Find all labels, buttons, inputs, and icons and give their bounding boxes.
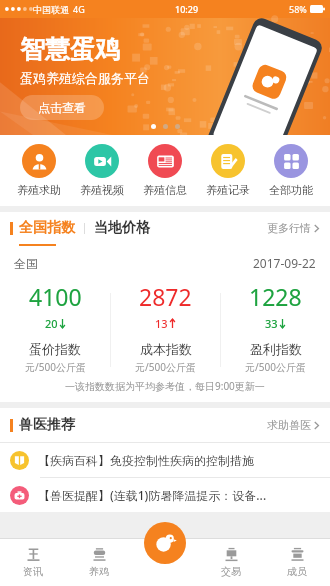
staticText: 养殖信息 [143, 183, 187, 197]
staticText: 20 [45, 316, 58, 331]
button[interactable]: 成员 [264, 538, 330, 586]
staticText: 4100 [29, 281, 82, 312]
staticText: 33 [265, 316, 278, 331]
staticText: 全国 [14, 256, 38, 271]
staticText: 兽医推荐 [19, 416, 75, 434]
button[interactable]: 养殖求助 [15, 144, 63, 197]
staticText: 全国指数 [19, 219, 75, 237]
staticText: 1228 [249, 281, 302, 312]
staticText: 中国联通 [33, 4, 69, 15]
button[interactable]: 2872 [111, 281, 220, 379]
staticText: 2017-09-22 [253, 255, 316, 271]
staticText: 养殖记录 [206, 183, 250, 197]
staticText: 4G [73, 3, 85, 15]
staticText: 蛋价指数 [29, 341, 81, 357]
button[interactable]: 智慧蛋鸡 [144, 522, 186, 564]
staticText: 成本指数 [140, 341, 192, 357]
button[interactable]: 养殖视频 [78, 144, 126, 197]
button[interactable]: 当地价格 [94, 219, 150, 237]
button[interactable]: 【疾病百科】免疫控制性疾病的控制措施 [0, 443, 330, 477]
button[interactable]: 全部功能 [267, 144, 315, 197]
button[interactable]: 【兽医提醒】(连载1)防暑降温提示：设备... [0, 478, 330, 512]
staticText: 求助兽医 [267, 418, 311, 432]
staticText: 智慧蛋鸡 [20, 34, 120, 65]
staticText: 资讯 [23, 565, 43, 578]
staticText: 元/500公斤蛋 [25, 360, 86, 374]
staticText: 元/500公斤蛋 [135, 360, 196, 374]
staticText: 盈利指数 [250, 341, 302, 357]
staticText: 10:29 [175, 3, 199, 15]
button[interactable]: 交易 [198, 538, 264, 586]
staticText: 一该指数数据为平均参考值，每日9:00更新一 [65, 379, 265, 393]
staticText: 养鸡 [89, 565, 109, 578]
staticText: 养殖视频 [80, 183, 124, 197]
staticText: 元/500公斤蛋 [245, 360, 306, 374]
button[interactable]: 点击查看 [20, 95, 104, 120]
button[interactable]: 求助兽医 [267, 418, 320, 432]
staticText: 58% [289, 3, 307, 15]
staticText: 点击查看 [38, 100, 86, 115]
button[interactable]: 1228 [221, 281, 330, 379]
staticText: 更多行情 [267, 221, 311, 235]
button[interactable]: 资讯 [0, 538, 66, 586]
staticText: 蛋鸡养殖综合服务平台 [20, 70, 150, 86]
staticText: 全部功能 [269, 183, 313, 197]
button[interactable]: 养殖信息 [141, 144, 189, 197]
staticText: 2872 [139, 281, 192, 312]
button[interactable]: 养殖记录 [204, 144, 252, 197]
button[interactable]: 更多行情 [267, 221, 320, 235]
staticText: 13 [155, 316, 168, 331]
staticText: 交易 [221, 565, 241, 578]
button[interactable]: 4100 [0, 281, 110, 379]
staticText: 成员 [287, 565, 307, 578]
staticText: 【兽医提醒】(连载1)防暑降温提示：设备... [38, 487, 267, 503]
staticText: 【疾病百科】免疫控制性疾病的控制措施 [38, 453, 254, 468]
button[interactable]: 全国指数 [19, 219, 75, 237]
button[interactable]: 养鸡 [66, 538, 132, 586]
staticText: 养殖求助 [17, 183, 61, 197]
